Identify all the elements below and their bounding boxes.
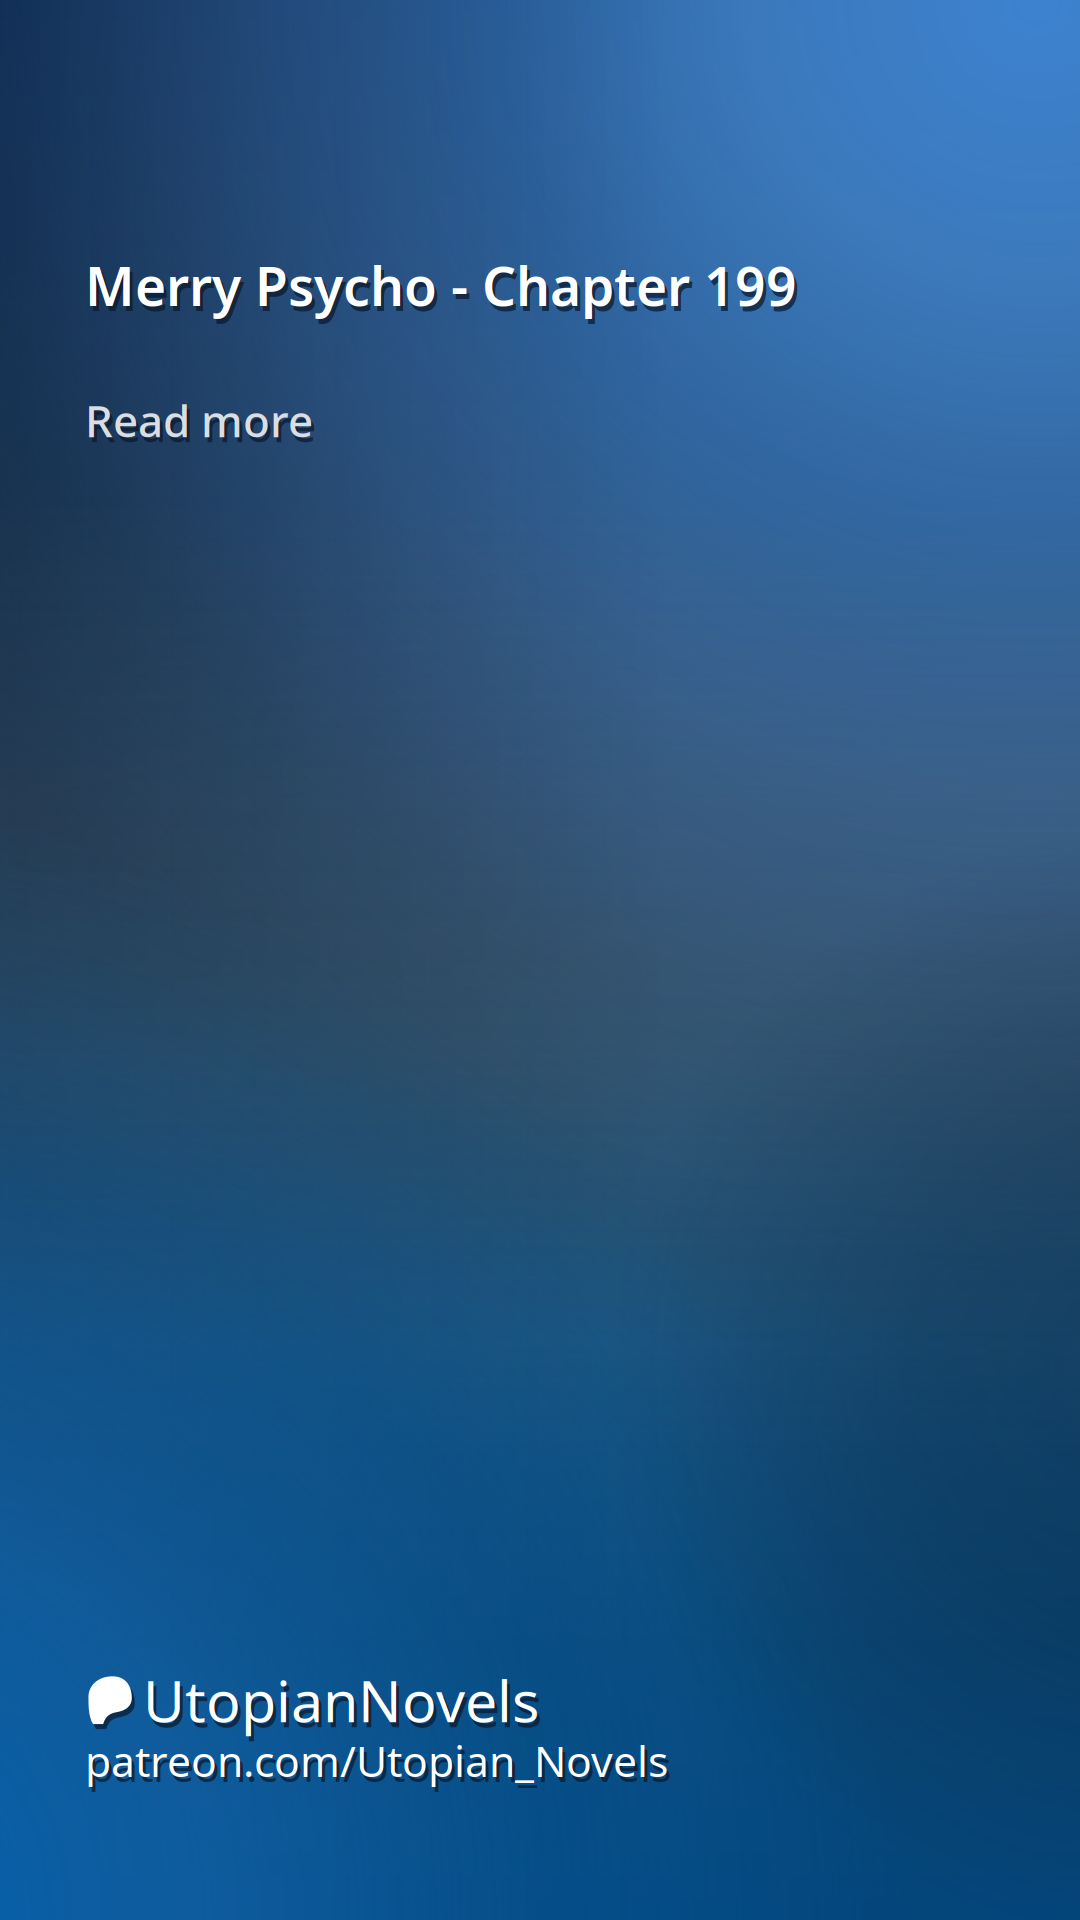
staticText: Read more: [85, 391, 313, 449]
staticText: UtopianNovels: [143, 1662, 539, 1738]
staticText: patreon.com/Utopian_Novels: [85, 1732, 668, 1789]
staticText: Merry Psycho - Chapter 199: [85, 250, 797, 321]
button[interactable]: Read more: [0, 0, 313, 449]
button[interactable]: UtopianNovels: [0, 0, 539, 1738]
